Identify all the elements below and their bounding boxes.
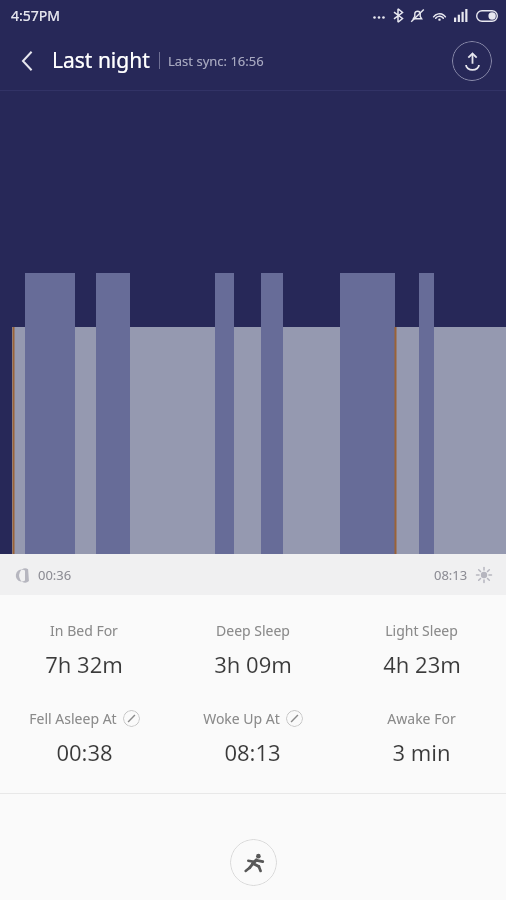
staticText: Light Sleep [385,621,458,640]
button[interactable]: Back [6,39,50,83]
staticText: 4h 23m [383,649,461,679]
staticText: In Bed For [50,621,118,640]
button[interactable]: Awake For [337,709,506,767]
button[interactable]: Woke Up At [168,709,337,767]
button[interactable]: In Bed For [0,621,168,679]
button[interactable]: Deep Sleep [168,621,337,679]
staticText: 08:13 [434,566,468,584]
staticText: Last night [52,46,150,75]
staticText: 00:36 [38,566,72,584]
button[interactable]: Share [452,41,492,81]
button[interactable]: Activity [230,839,277,886]
staticText: 08:13 [224,737,281,767]
staticText: Deep Sleep [216,621,290,640]
staticText: Awake For [387,709,456,728]
staticText: 7h 32m [45,649,123,679]
button[interactable]: Light Sleep [337,621,506,679]
button[interactable]: Fell Asleep At [0,709,168,767]
staticText: Last sync: 16:56 [168,52,264,70]
staticText: 3h 09m [214,649,292,679]
staticText: Woke Up At [203,709,280,728]
staticText: 4:57PM [11,6,60,25]
staticText: Fell Asleep At [29,709,117,728]
staticText: 00:38 [56,737,113,767]
staticText: 3 min [392,737,451,767]
